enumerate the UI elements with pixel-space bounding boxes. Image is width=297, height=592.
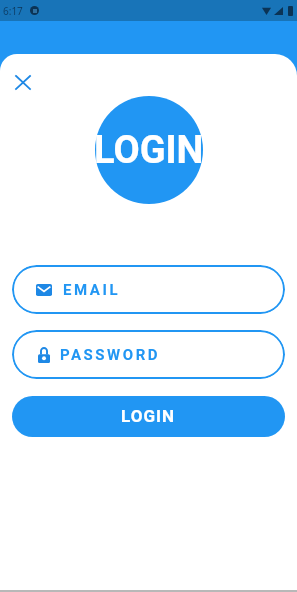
- staticText: EMAIL: [63, 281, 121, 299]
- staticText: PASSWORD: [60, 346, 161, 364]
- button[interactable]: Close: [6, 66, 39, 99]
- staticText: LOGIN: [121, 406, 176, 426]
- staticText: LOGIN: [94, 128, 204, 173]
- button[interactable]: LOGIN: [12, 396, 285, 437]
- button[interactable]: EMAIL: [12, 265, 285, 314]
- button[interactable]: PASSWORD: [12, 330, 285, 379]
- staticText: 6:17: [3, 4, 23, 18]
